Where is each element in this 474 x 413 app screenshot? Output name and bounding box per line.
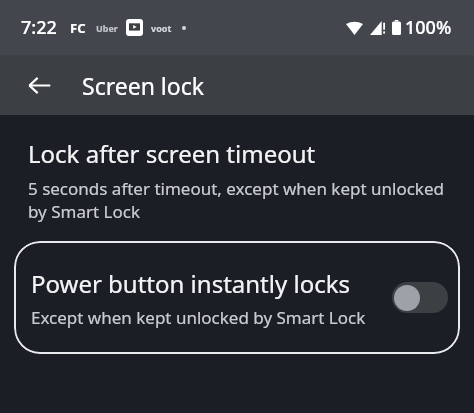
button[interactable]: Lock after screen timeout	[0, 137, 474, 223]
button[interactable]: Back	[18, 64, 60, 106]
staticText: 100%	[405, 15, 452, 40]
staticText: Lock after screen timeout	[28, 137, 316, 170]
staticText: 7:22	[21, 15, 57, 40]
staticText: 5 seconds after timeout, except when kep…	[28, 177, 450, 223]
button[interactable]: Power button instantly locks	[14, 241, 460, 354]
staticText: voot	[151, 22, 172, 34]
staticText: Uber	[96, 22, 118, 34]
staticText: FC	[70, 19, 86, 37]
button[interactable]: Power button instantly locks toggle	[392, 282, 448, 313]
staticText: Screen lock	[82, 70, 205, 101]
staticText: Power button instantly locks	[31, 267, 350, 300]
staticText: Except when kept unlocked by Smart Lock	[31, 306, 366, 329]
